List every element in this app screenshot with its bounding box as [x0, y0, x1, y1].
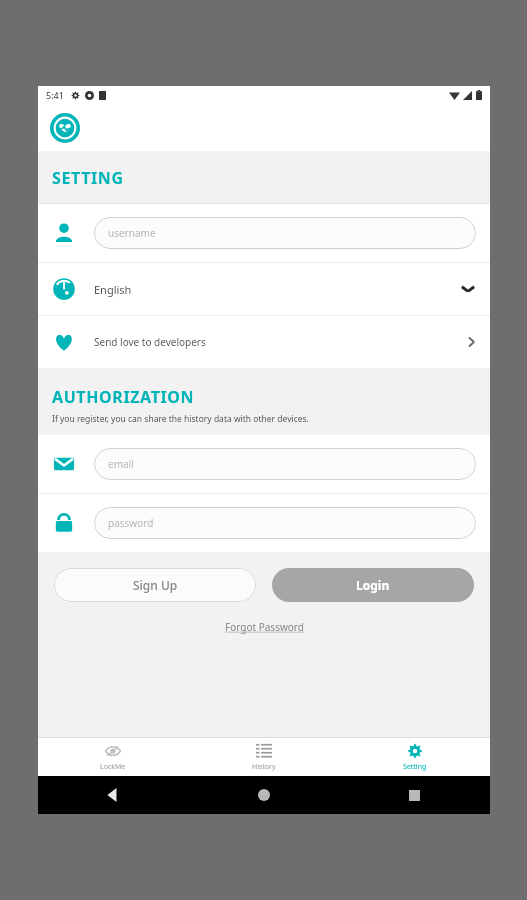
- staticText: AUTHORIZATION: [52, 386, 195, 408]
- staticText: username: [108, 226, 156, 240]
- button[interactable]: Home: [188, 776, 339, 814]
- button[interactable]: Language: [38, 263, 490, 315]
- staticText: History: [252, 762, 276, 772]
- other: Password: [52, 511, 76, 535]
- button[interactable]: Forgot Password: [213, 616, 316, 638]
- button[interactable]: Email: [38, 435, 490, 493]
- button[interactable]: LockMe: [38, 738, 188, 776]
- staticText: If you register, you can share the histo…: [52, 413, 309, 425]
- other: Email: [52, 452, 76, 476]
- button[interactable]: Back: [38, 776, 188, 814]
- staticText: English: [94, 282, 132, 297]
- staticText: SETTING: [52, 167, 124, 189]
- staticText: LockMe: [100, 762, 126, 772]
- staticText: Send love to developers: [94, 335, 206, 349]
- button[interactable]: History: [188, 738, 339, 776]
- staticText: Forgot Password: [225, 620, 304, 634]
- button[interactable]: Login: [272, 568, 474, 602]
- button[interactable]: Setting: [339, 738, 490, 776]
- staticText: email: [108, 457, 134, 471]
- other: Language: [52, 277, 76, 301]
- other: Username: [52, 221, 76, 245]
- staticText: Sign Up: [133, 577, 178, 593]
- staticText: Setting: [403, 762, 427, 772]
- staticText: Login: [356, 577, 390, 593]
- button[interactable]: Send love to developers: [38, 316, 490, 368]
- staticText: 5:41: [46, 89, 64, 101]
- staticText: password: [108, 516, 154, 530]
- other: Send love to developers: [52, 330, 76, 354]
- button[interactable]: Recents: [339, 776, 490, 814]
- button[interactable]: Password: [38, 494, 490, 552]
- button[interactable]: Username: [38, 204, 490, 262]
- button[interactable]: Sign Up: [54, 568, 256, 602]
- button[interactable]: App logo: [50, 113, 80, 143]
